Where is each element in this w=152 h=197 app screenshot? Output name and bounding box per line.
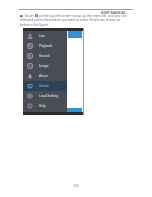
staticText: Record xyxy=(39,54,50,58)
staticText: below in the figure. xyxy=(20,23,49,28)
button[interactable]: Live xyxy=(23,31,67,41)
staticText: ● Touch xyxy=(20,14,35,18)
staticText: Playback xyxy=(39,44,53,48)
staticText: Local Setting xyxy=(39,94,59,98)
staticText: on the top left corner to pop up the men… xyxy=(38,14,127,18)
button[interactable]: Alarm xyxy=(23,71,67,81)
button[interactable]: Device xyxy=(23,81,67,91)
button[interactable]: Local Setting xyxy=(23,91,67,101)
button[interactable]: Record xyxy=(23,51,67,61)
button[interactable]: Help xyxy=(23,101,67,111)
staticText: Device xyxy=(39,84,49,88)
button[interactable]: Image xyxy=(23,61,67,71)
staticText: Help xyxy=(39,104,46,108)
staticText: USER MANUAL xyxy=(85,10,126,15)
staticText: Image xyxy=(39,64,49,68)
button[interactable]: Playback xyxy=(23,41,67,51)
staticText: Live xyxy=(39,34,45,38)
staticText: view and select the module you want to e… xyxy=(20,18,120,23)
staticText: Alarm xyxy=(39,74,48,78)
staticText: 102 xyxy=(73,183,80,188)
